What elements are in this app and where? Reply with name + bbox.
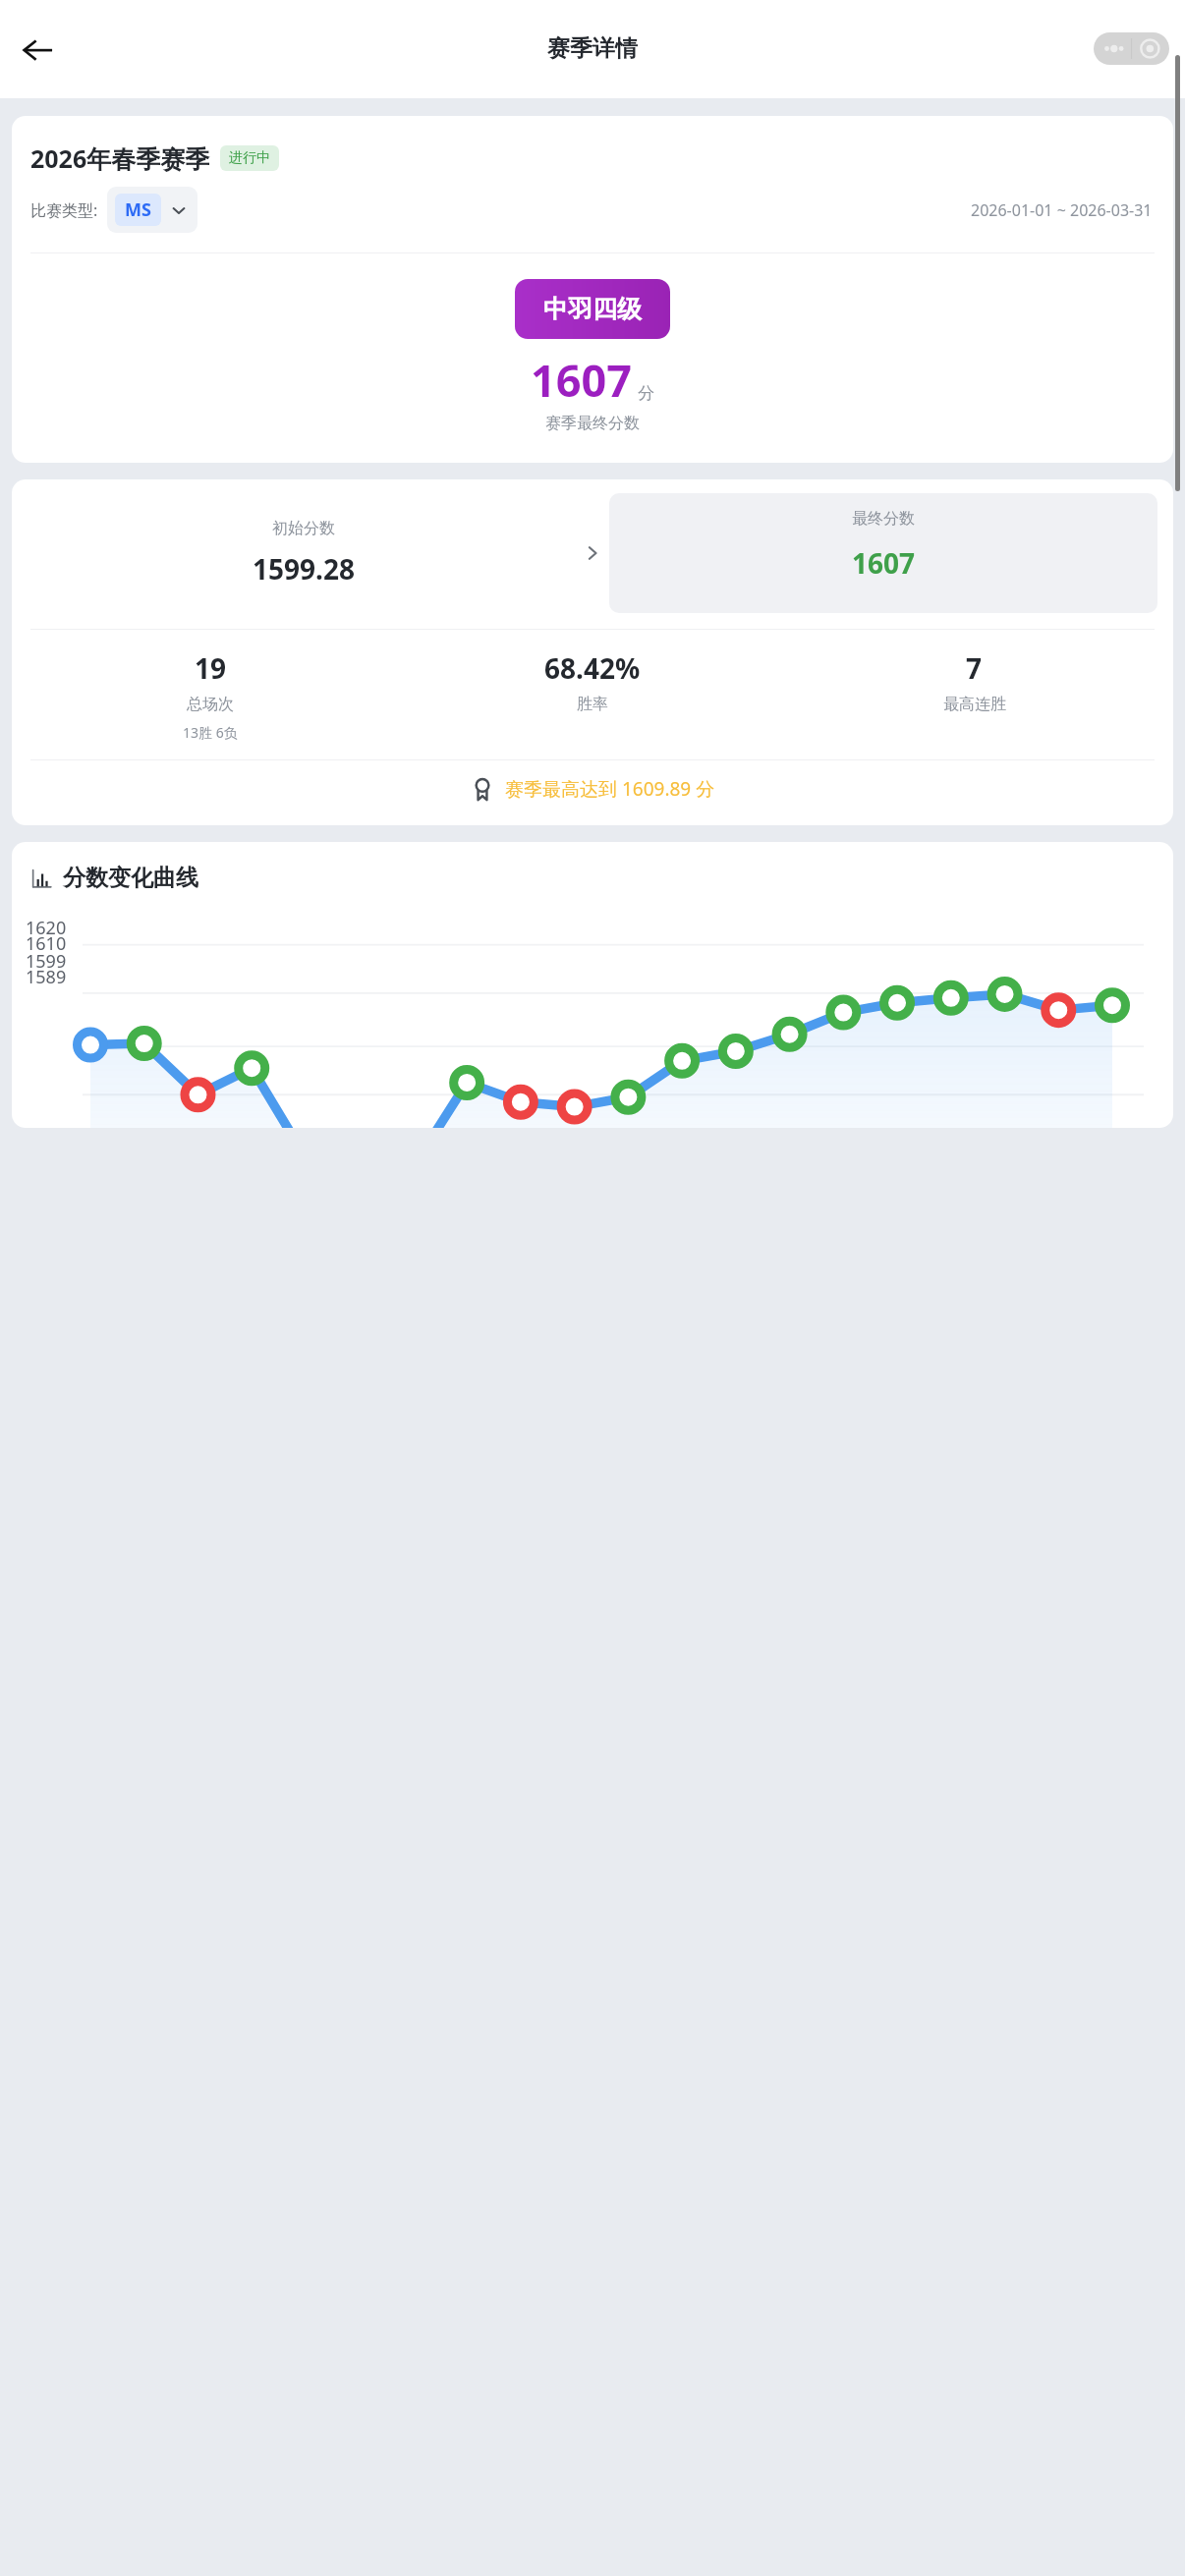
- staticText: 1607: [531, 350, 632, 410]
- staticText: 分数变化曲线: [63, 864, 198, 892]
- staticText: 最终分数: [852, 509, 915, 529]
- staticText: 1607: [852, 544, 916, 582]
- staticText: 2026年春季赛季: [30, 141, 210, 175]
- staticText: 1599: [26, 949, 67, 974]
- button[interactable]: 赛季最高达到 1609.89 分: [12, 776, 1173, 802]
- staticText: 最高连胜: [943, 695, 1006, 714]
- staticText: 19: [195, 649, 227, 687]
- staticText: 13胜 6负: [183, 723, 238, 742]
- staticText: 赛季最终分数: [545, 414, 640, 433]
- staticText: 2026-01-01 ~ 2026-03-31: [971, 199, 1153, 221]
- staticText: 1589: [26, 965, 67, 989]
- staticText: 初始分数: [272, 519, 335, 538]
- staticText: 1610: [26, 931, 67, 956]
- staticText: 1620: [26, 916, 67, 940]
- button[interactable]: Menu: [1094, 32, 1169, 65]
- staticText: 比赛类型:: [30, 199, 98, 221]
- staticText: 中羽四级: [543, 294, 642, 324]
- staticText: 总场次: [187, 695, 234, 714]
- staticText: MS: [125, 197, 151, 222]
- button[interactable]: Back: [10, 22, 65, 77]
- staticText: 1599.28: [253, 550, 355, 588]
- staticText: 进行中: [229, 149, 270, 167]
- staticText: 胜率: [577, 695, 608, 714]
- staticText: 赛季最高达到 1609.89 分: [505, 776, 715, 802]
- staticText: 68.42%: [544, 649, 641, 687]
- staticText: 7: [966, 649, 983, 687]
- button[interactable]: 中羽四级: [515, 279, 670, 339]
- staticText: 分: [638, 383, 654, 404]
- button[interactable]: MS: [107, 187, 197, 233]
- staticText: 赛季详情: [547, 34, 638, 63]
